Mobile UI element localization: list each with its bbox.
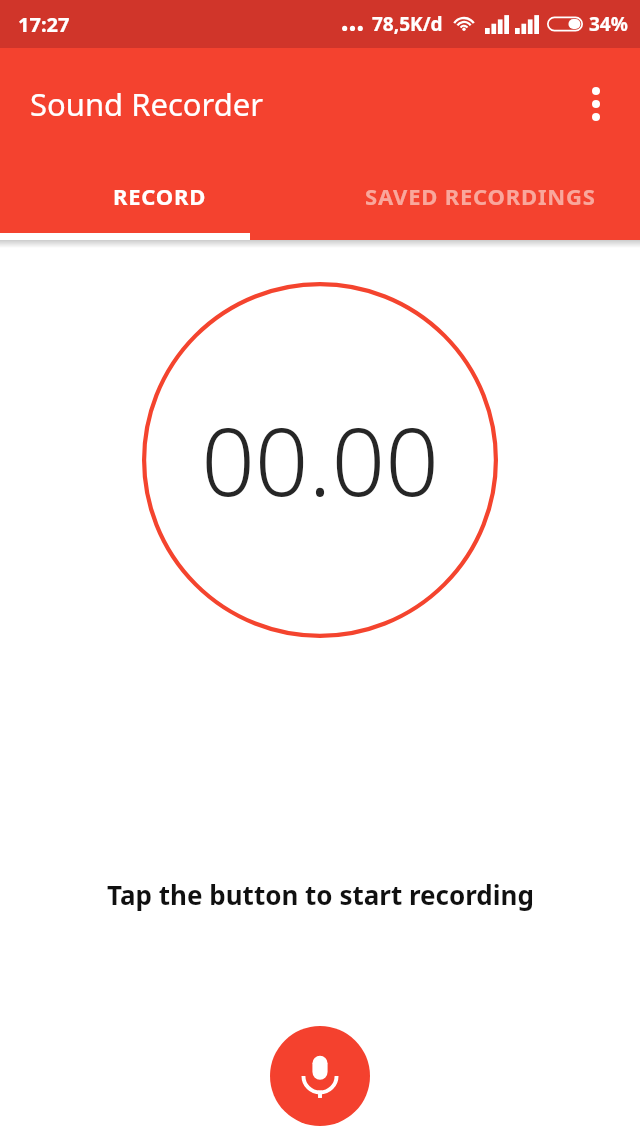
button[interactable]: Start recording — [270, 1026, 370, 1126]
staticText: SAVED RECORDINGS — [365, 181, 596, 211]
staticText: 34% — [589, 11, 628, 37]
staticText: Tap the button to start recording — [107, 877, 534, 912]
staticText: 17:27 — [18, 11, 70, 38]
button[interactable]: RECORD — [0, 160, 320, 240]
staticText: RECORD — [113, 181, 207, 211]
button[interactable]: SAVED RECORDINGS — [320, 160, 640, 240]
button[interactable]: More options — [568, 76, 624, 132]
staticText: Sound Recorder — [30, 83, 264, 125]
staticText: 78,5K/d — [372, 11, 443, 37]
staticText: 00.00 — [201, 396, 439, 524]
